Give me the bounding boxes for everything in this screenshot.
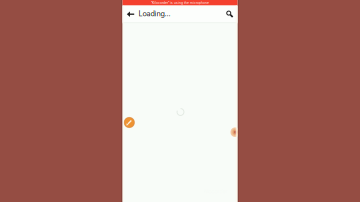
button[interactable]: Back [122,5,138,22]
button[interactable]: Search [221,5,237,22]
staticText: "Kilocorder" is using the microphone [151,1,209,5]
button[interactable]: Record [229,126,241,138]
button[interactable]: New note [123,116,136,129]
staticText: Loading... [138,9,170,18]
